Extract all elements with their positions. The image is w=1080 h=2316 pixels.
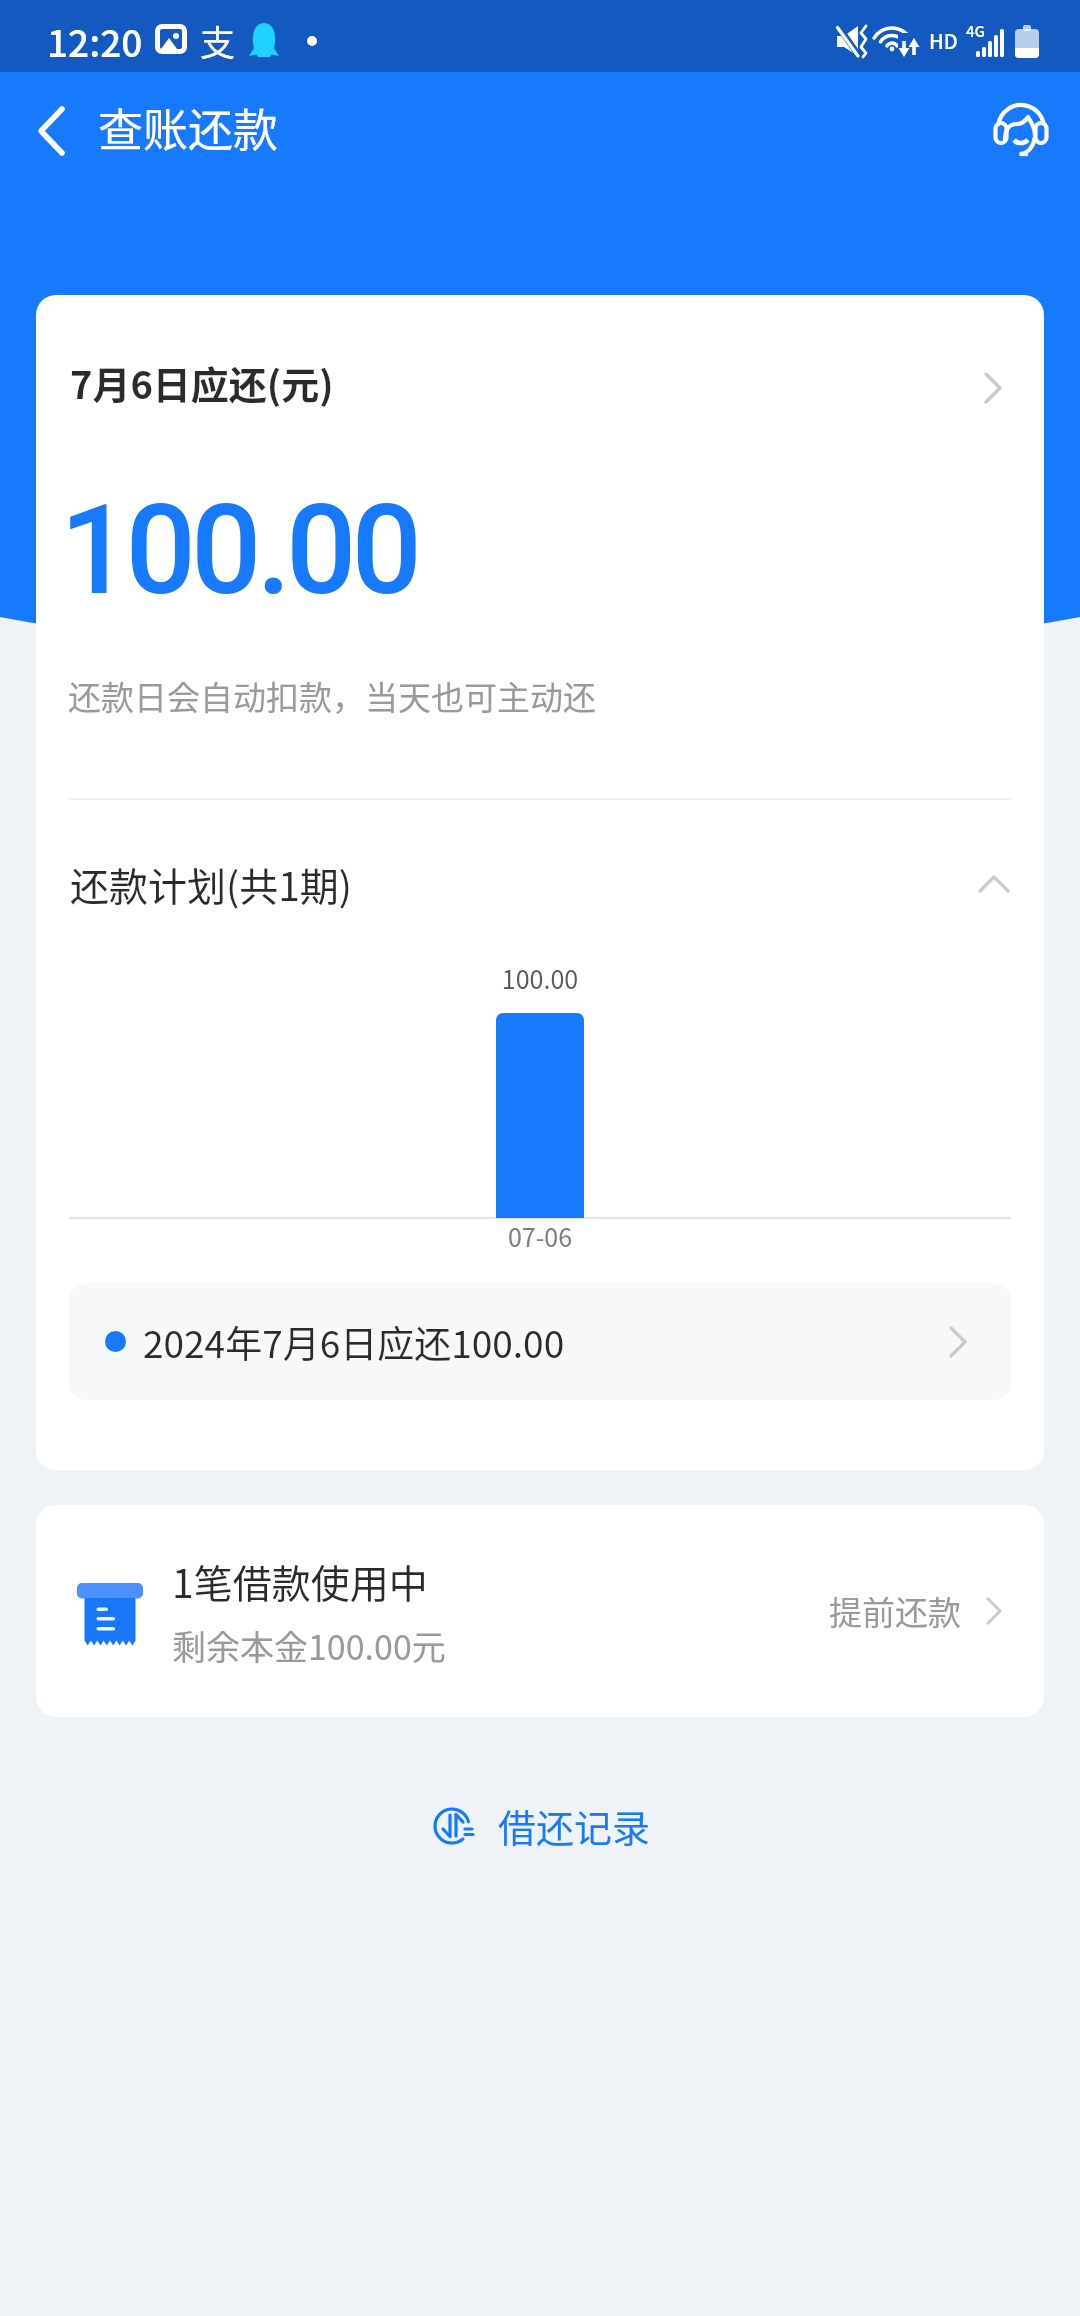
staticText: 100.00 bbox=[60, 478, 418, 623]
staticText: 剩余本金100.00元 bbox=[172, 1621, 446, 1670]
staticText: 12:20 bbox=[47, 14, 143, 68]
staticText: 还款日会自动扣款，当天也可主动还 bbox=[68, 672, 596, 720]
staticText: 4G bbox=[966, 20, 986, 42]
staticText: HD bbox=[929, 26, 958, 55]
button[interactable]: 借还记录 bbox=[406, 1784, 675, 1867]
staticText: 7月6日应还(元) bbox=[70, 355, 334, 410]
button[interactable]: 7月6日应还(元) bbox=[36, 295, 1044, 469]
staticText: 2024年7月6日应还100.00 bbox=[143, 1315, 565, 1369]
staticText: 100.00 bbox=[36, 960, 1044, 996]
button[interactable]: Back bbox=[0, 79, 104, 183]
staticText: 1笔借款使用中 bbox=[172, 1553, 428, 1609]
staticText: 07-06 bbox=[36, 1218, 1044, 1254]
button[interactable]: 还款计划(共1期) bbox=[36, 814, 1044, 954]
button[interactable]: 2024年7月6日应还100.00 bbox=[69, 1283, 1011, 1400]
staticText: 支 bbox=[200, 15, 236, 66]
staticText: 借还记录 bbox=[498, 1798, 651, 1853]
staticText: 还款计划(共1期) bbox=[70, 856, 353, 912]
button[interactable]: 1笔借款使用中 bbox=[36, 1505, 1044, 1717]
staticText: 提前还款 bbox=[829, 1587, 961, 1635]
button[interactable]: Customer service bbox=[962, 72, 1080, 190]
staticText: 查账还款 bbox=[98, 95, 279, 160]
